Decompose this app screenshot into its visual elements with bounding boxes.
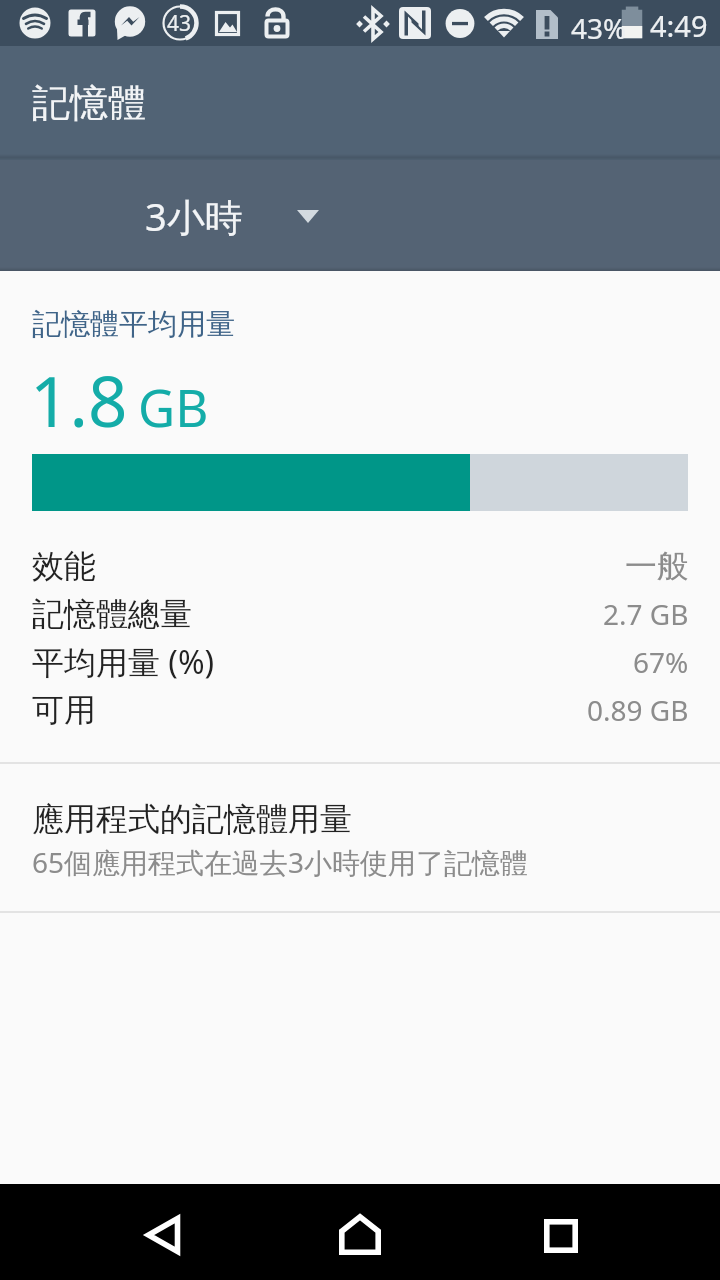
staticText: 記憶體: [32, 79, 146, 127]
staticText: 4:49: [650, 6, 708, 45]
staticText: 2.7 GB: [603, 595, 689, 633]
staticText: 65個應用程式在過去3小時使用了記憶體: [32, 843, 529, 881]
staticText: 應用程式的記憶體用量: [32, 799, 352, 839]
button[interactable]: 應用程式的記憶體用量: [0, 764, 720, 911]
staticText: 平均用量 (%): [32, 640, 215, 684]
button[interactable]: Home: [312, 1186, 408, 1280]
staticText: 67%: [633, 643, 689, 681]
staticText: 0.89 GB: [587, 691, 689, 729]
staticText: 1.8: [30, 353, 128, 447]
staticText: 一般: [625, 546, 689, 586]
button[interactable]: Back: [115, 1187, 211, 1280]
staticText: 43%: [571, 9, 627, 47]
staticText: 3小時: [145, 190, 243, 242]
staticText: 記憶體總量: [32, 594, 192, 634]
staticText: 43: [167, 9, 192, 38]
button[interactable]: 3小時: [145, 190, 319, 242]
staticText: GB: [138, 372, 209, 441]
button[interactable]: Recents: [513, 1188, 609, 1280]
staticText: 可用: [32, 690, 96, 730]
staticText: 效能: [32, 546, 96, 586]
staticText: 記憶體平均用量: [32, 306, 235, 343]
